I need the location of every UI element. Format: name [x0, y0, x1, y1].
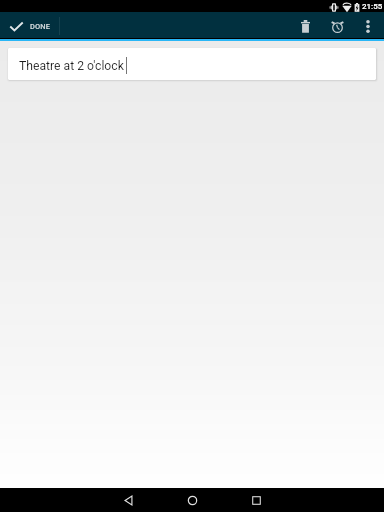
button[interactable]: More options — [353, 13, 383, 39]
button[interactable]: Home — [160, 488, 224, 512]
button[interactable]: Theatre at 2 o'clock — [8, 48, 376, 80]
staticText: Theatre at 2 o'clock — [19, 59, 124, 73]
staticText: DONE — [30, 22, 51, 31]
button[interactable]: DONE — [0, 13, 64, 39]
button[interactable]: Recents — [224, 488, 288, 512]
staticText: 21:55 — [362, 2, 383, 11]
button[interactable]: Delete — [289, 13, 321, 39]
button[interactable]: Set alarm — [321, 13, 353, 39]
button[interactable]: Back — [96, 488, 160, 512]
